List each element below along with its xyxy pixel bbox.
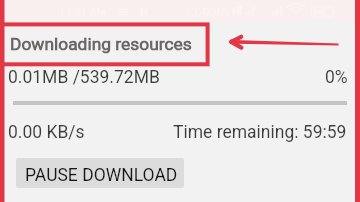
staticText: 0.01MB /539.72MB: [8, 67, 160, 88]
staticText: Downloading resources: [10, 34, 192, 54]
button[interactable]: PAUSE DOWNLOAD: [16, 158, 184, 188]
staticText: PAUSE DOWNLOAD: [25, 165, 178, 186]
other: Status icons: [0, 0, 360, 202]
staticText: 0%: [325, 67, 348, 88]
staticText: 0.00 KB/s: [8, 122, 85, 143]
staticText: Time remaining: 59:59: [173, 122, 347, 143]
